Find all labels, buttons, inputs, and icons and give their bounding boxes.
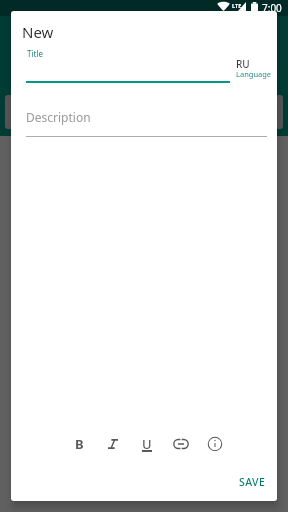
button[interactable]: SAVE — [231, 470, 274, 494]
staticText: Title — [27, 48, 43, 59]
staticText: 7:00 — [262, 1, 282, 15]
button[interactable]: Insert link — [170, 433, 192, 455]
button[interactable]: Info — [204, 433, 226, 455]
staticText: RU — [236, 57, 250, 71]
staticText: New — [22, 22, 54, 42]
staticText: U — [142, 435, 152, 453]
staticText: B — [75, 435, 84, 453]
staticText: SAVE — [239, 475, 266, 489]
button[interactable]: Underline — [136, 433, 158, 455]
staticText: Language — [236, 69, 272, 79]
staticText: LTE — [232, 2, 242, 9]
button[interactable]: Bold — [68, 433, 90, 455]
button[interactable]: Italic — [102, 433, 124, 455]
staticText: Description — [26, 109, 91, 125]
